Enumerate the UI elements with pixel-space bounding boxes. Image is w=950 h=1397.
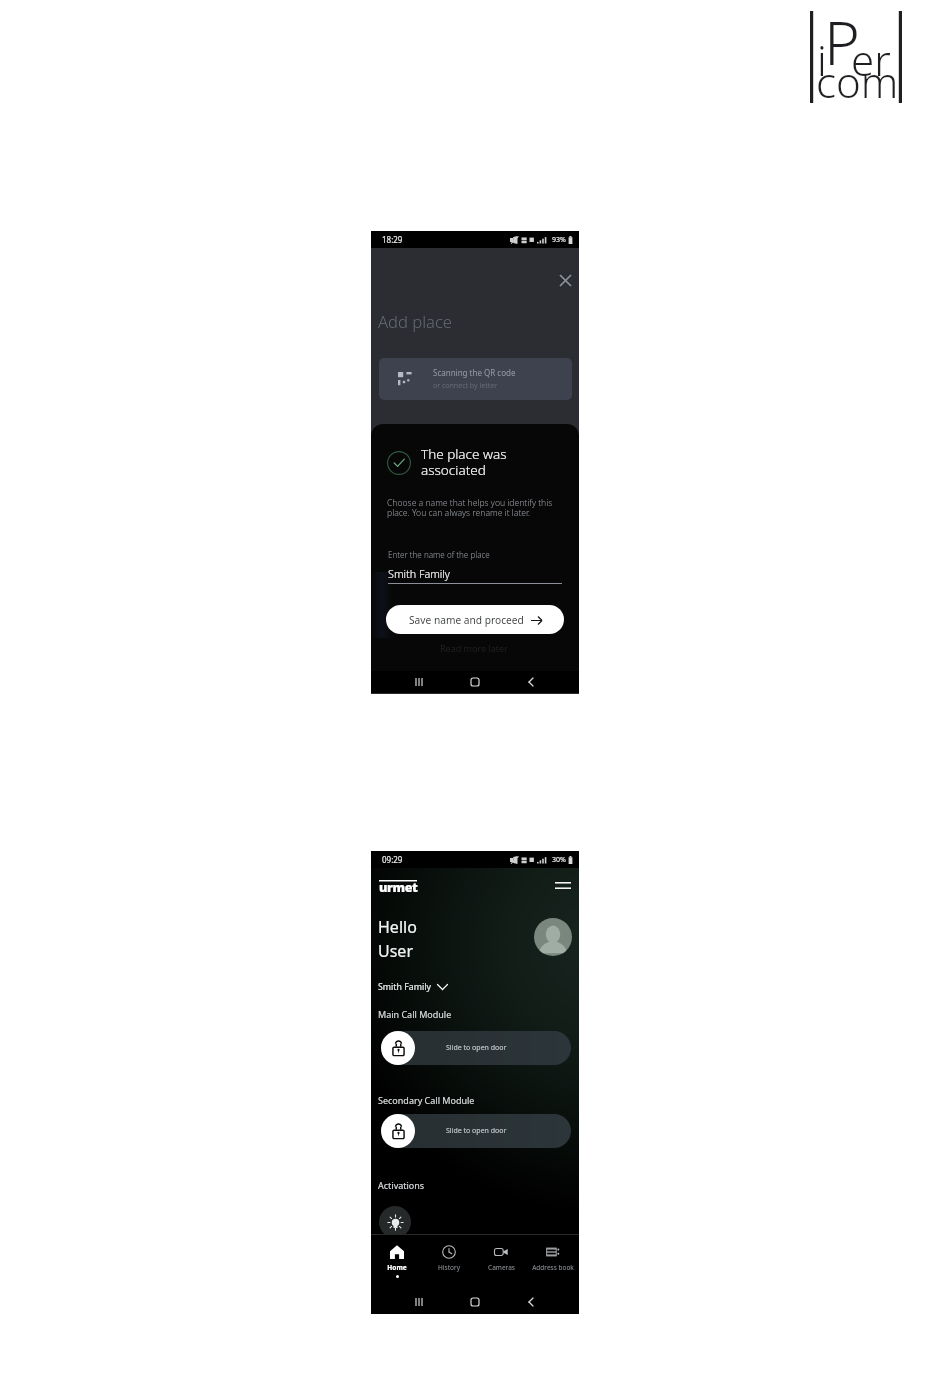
staticText: 93%: [552, 235, 566, 245]
staticText: Main Call Module: [378, 1008, 452, 1020]
staticText: Scanning the QR code: [433, 367, 516, 378]
button[interactable]: Home: [467, 674, 483, 690]
button[interactable]: Recents: [411, 1294, 427, 1310]
button[interactable]: Home: [371, 1234, 423, 1292]
staticText: 09:29: [382, 854, 403, 865]
staticText: Cameras: [488, 1263, 515, 1272]
button[interactable]: Back: [523, 674, 539, 690]
staticText: P: [824, 0, 860, 83]
button[interactable]: Cameras: [475, 1234, 527, 1292]
staticText: Slide to open door: [446, 1043, 507, 1053]
staticText: Secondary Call Module: [378, 1094, 475, 1106]
button[interactable]: Menu: [553, 875, 573, 895]
button[interactable]: Close: [557, 272, 573, 288]
staticText: Save name and proceed: [409, 613, 524, 627]
staticText: Smith Family: [378, 981, 431, 993]
staticText: urmet: [379, 879, 418, 893]
button[interactable]: Open door: [381, 1031, 415, 1065]
staticText: com: [816, 53, 899, 110]
staticText: Choose a name that helps you identify th…: [387, 497, 553, 519]
button[interactable]: Profile: [534, 918, 572, 956]
staticText: i: [817, 31, 827, 88]
staticText: Address book: [532, 1263, 574, 1272]
button[interactable]: Save name and proceed: [386, 605, 564, 634]
staticText: Enter the name of the place: [388, 549, 490, 560]
button[interactable]: History: [423, 1234, 475, 1292]
staticText: 30%: [552, 855, 566, 865]
staticText: 18:29: [382, 234, 403, 245]
staticText: Add place: [378, 310, 453, 333]
staticText: Home: [387, 1263, 407, 1272]
staticText: History: [438, 1263, 460, 1272]
button[interactable]: Scanning the QR code: [379, 358, 572, 400]
button[interactable]: Address book: [527, 1234, 579, 1292]
staticText: Hello User: [378, 916, 417, 962]
button[interactable]: Smith Family: [378, 981, 448, 993]
staticText: er: [851, 31, 891, 88]
staticText: or connect by letter: [433, 381, 498, 391]
button[interactable]: Light: [379, 1206, 411, 1238]
staticText: Smith Family: [388, 566, 450, 581]
button[interactable]: Slide to open door: [381, 1031, 571, 1065]
button[interactable]: Recents: [411, 674, 427, 690]
staticText: Activations: [378, 1179, 425, 1191]
button[interactable]: Home: [467, 1294, 483, 1310]
staticText: The place was associated: [421, 445, 507, 479]
button[interactable]: Slide to open door: [381, 1114, 571, 1148]
button[interactable]: Open door: [381, 1114, 415, 1148]
button[interactable]: Back: [523, 1294, 539, 1310]
staticText: Slide to open door: [446, 1126, 507, 1136]
button[interactable]: Read more later: [440, 642, 508, 654]
